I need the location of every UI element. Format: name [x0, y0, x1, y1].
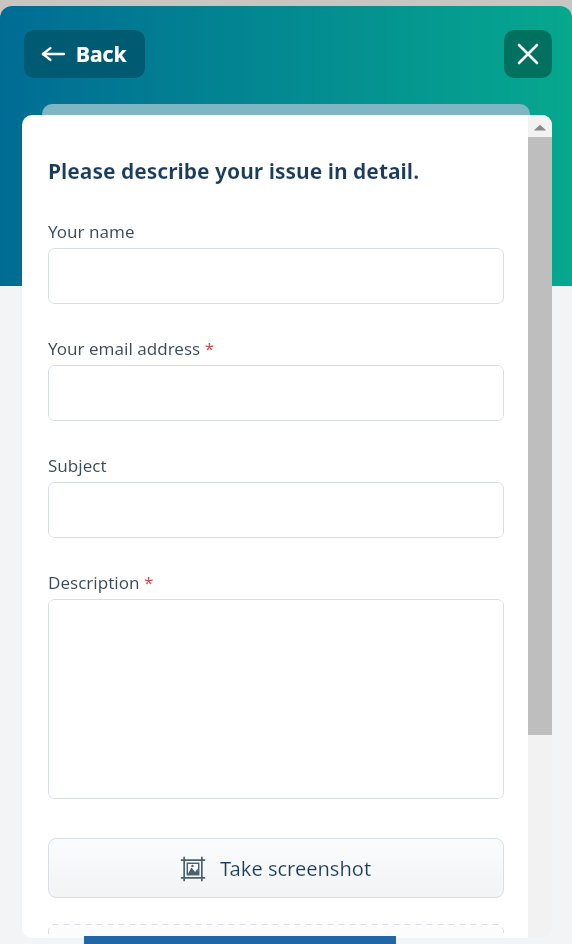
button[interactable] — [48, 482, 504, 538]
button[interactable]: Take screenshot — [48, 838, 504, 898]
staticText: Description * — [48, 571, 154, 594]
button[interactable]: Back — [24, 30, 145, 78]
staticText: Your name — [48, 220, 135, 243]
button[interactable] — [48, 924, 504, 938]
button[interactable] — [48, 248, 504, 304]
staticText: Take screenshot — [220, 855, 372, 882]
staticText: Back — [76, 40, 127, 69]
button[interactable] — [48, 599, 504, 799]
button[interactable]: Close — [504, 30, 552, 78]
button[interactable] — [48, 365, 504, 421]
staticText: Subject — [48, 454, 107, 477]
staticText: Your email address * — [48, 337, 215, 360]
staticText: Please describe your issue in detail. — [48, 157, 420, 186]
